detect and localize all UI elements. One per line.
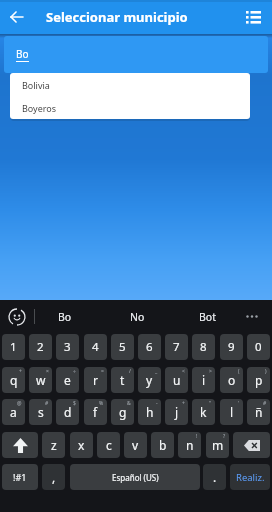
button[interactable]: t bbox=[111, 367, 134, 393]
button[interactable]: Bo bbox=[34, 300, 96, 333]
staticText: ? bbox=[223, 433, 226, 440]
staticText: _ bbox=[155, 368, 158, 375]
button[interactable] bbox=[0, 300, 34, 333]
button[interactable]: ñ bbox=[247, 399, 270, 425]
button[interactable]: k bbox=[192, 399, 215, 425]
button[interactable]: 6 bbox=[138, 334, 161, 360]
staticText: " bbox=[209, 400, 212, 407]
staticText: t bbox=[120, 372, 125, 388]
button[interactable]: 5 bbox=[111, 334, 134, 360]
staticText: l bbox=[230, 404, 234, 420]
button[interactable]: o bbox=[220, 367, 243, 393]
staticText: × bbox=[46, 368, 49, 375]
button[interactable]: m bbox=[206, 432, 229, 458]
staticText: g bbox=[119, 404, 127, 420]
staticText: h bbox=[146, 404, 154, 420]
button[interactable]: v bbox=[124, 432, 147, 458]
button[interactable]: q bbox=[2, 367, 25, 393]
staticText: > bbox=[209, 368, 212, 375]
staticText: o bbox=[228, 372, 236, 388]
button[interactable]: z bbox=[42, 432, 65, 458]
staticText: u bbox=[173, 372, 181, 388]
button[interactable]: !#1 bbox=[2, 464, 38, 490]
staticText: # bbox=[45, 400, 49, 407]
button[interactable]: f bbox=[84, 399, 107, 425]
button[interactable]: c bbox=[97, 432, 120, 458]
staticText: d bbox=[64, 404, 72, 420]
button[interactable]: 0 bbox=[247, 334, 270, 360]
button[interactable]: w bbox=[29, 367, 52, 393]
button[interactable]: d bbox=[56, 399, 79, 425]
button[interactable] bbox=[233, 432, 270, 458]
staticText: + bbox=[19, 368, 22, 375]
button[interactable]: g bbox=[111, 399, 134, 425]
staticText: % bbox=[99, 400, 104, 407]
staticText: n bbox=[186, 437, 194, 453]
staticText: 9 bbox=[228, 339, 235, 355]
button[interactable]: Boyeros bbox=[10, 96, 250, 119]
button[interactable]: 4 bbox=[84, 334, 107, 360]
button[interactable]: b bbox=[151, 432, 174, 458]
button[interactable]: n bbox=[178, 432, 201, 458]
staticText: a bbox=[10, 404, 17, 420]
button[interactable]: 7 bbox=[165, 334, 188, 360]
button[interactable]: i bbox=[192, 367, 215, 393]
staticText: Bot bbox=[199, 310, 216, 324]
button[interactable] bbox=[0, 0, 34, 34]
button[interactable]: Español (US) bbox=[70, 464, 200, 490]
button[interactable]: j bbox=[165, 399, 188, 425]
button[interactable]: e bbox=[56, 367, 79, 393]
staticText: j bbox=[175, 404, 179, 420]
button[interactable]: 9 bbox=[220, 334, 243, 360]
staticText: 6 bbox=[146, 339, 153, 355]
button[interactable]: 3 bbox=[56, 334, 79, 360]
staticText: Bo bbox=[16, 47, 29, 61]
staticText: No bbox=[130, 310, 145, 324]
button[interactable]: p bbox=[247, 367, 270, 393]
button[interactable]: . bbox=[203, 464, 226, 490]
staticText: y bbox=[146, 372, 153, 388]
button[interactable]: , bbox=[42, 464, 65, 490]
button[interactable] bbox=[238, 300, 266, 333]
staticText: w bbox=[36, 372, 46, 388]
button[interactable] bbox=[236, 0, 270, 34]
staticText: = bbox=[101, 368, 104, 375]
staticText: i bbox=[202, 372, 206, 388]
staticText: f bbox=[93, 404, 98, 420]
button[interactable]: Bolivia bbox=[10, 73, 250, 96]
staticText: r bbox=[93, 372, 98, 388]
button[interactable]: u bbox=[165, 367, 188, 393]
staticText: Bo bbox=[58, 310, 72, 324]
staticText: # bbox=[263, 400, 267, 407]
staticText: k bbox=[200, 404, 207, 420]
button[interactable]: 1 bbox=[2, 334, 25, 360]
button[interactable]: 2 bbox=[29, 334, 52, 360]
button[interactable]: s bbox=[29, 399, 52, 425]
button[interactable]: a bbox=[2, 399, 25, 425]
staticText: 4 bbox=[92, 339, 99, 355]
staticText: z bbox=[51, 437, 57, 453]
button[interactable]: Bot bbox=[174, 300, 240, 333]
staticText: ! bbox=[196, 433, 198, 440]
button[interactable]: y bbox=[138, 367, 161, 393]
button[interactable]: h bbox=[138, 399, 161, 425]
staticText: + bbox=[182, 400, 185, 407]
button[interactable]: r bbox=[84, 367, 107, 393]
button[interactable]: l bbox=[220, 399, 243, 425]
staticText: b bbox=[159, 437, 167, 453]
staticText: Realiz. bbox=[236, 471, 265, 484]
staticText: $ bbox=[73, 400, 76, 407]
staticText: , bbox=[52, 469, 56, 485]
staticText: v bbox=[132, 437, 139, 453]
button[interactable]: Bo bbox=[4, 36, 268, 73]
staticText: Boyeros bbox=[22, 102, 57, 114]
staticText: - bbox=[156, 400, 158, 407]
button[interactable]: 8 bbox=[192, 334, 215, 360]
button[interactable]: Realiz. bbox=[230, 464, 270, 490]
button[interactable] bbox=[2, 432, 38, 458]
staticText: Bolivia bbox=[22, 79, 50, 91]
button[interactable]: No bbox=[104, 300, 170, 333]
button[interactable]: x bbox=[70, 432, 93, 458]
staticText: ñ bbox=[255, 404, 263, 420]
staticText: < bbox=[182, 368, 185, 375]
